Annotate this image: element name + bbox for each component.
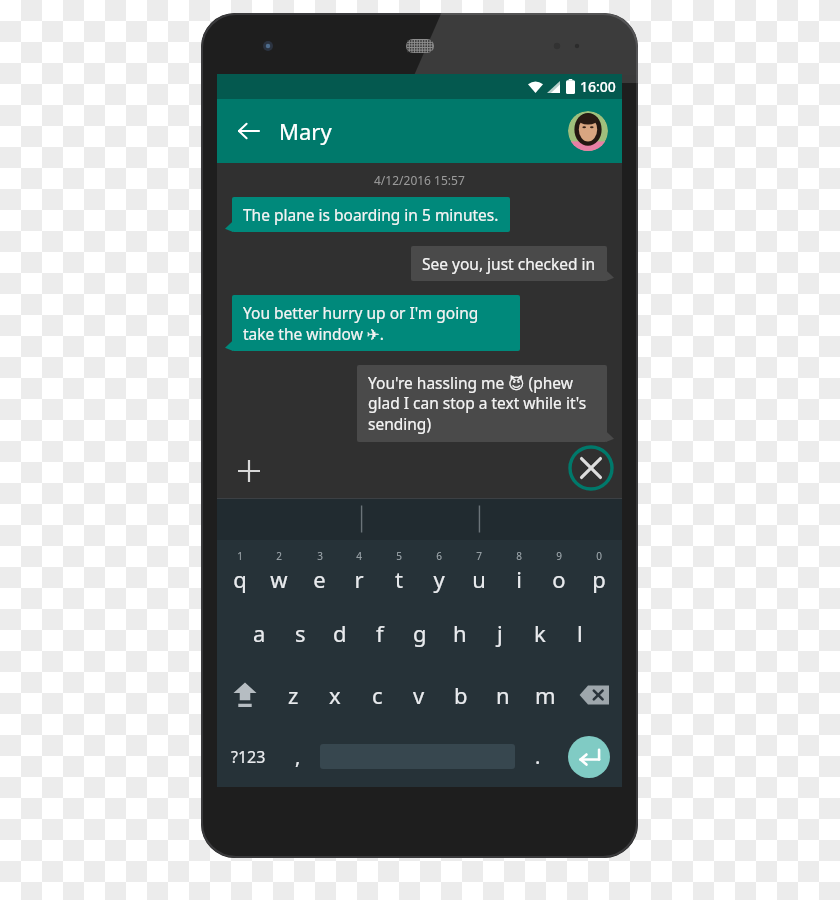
staticText: 4 [356, 549, 362, 563]
staticText: , [295, 743, 301, 770]
staticText: a [253, 618, 266, 648]
button[interactable]: 8 [499, 540, 539, 602]
button[interactable]: 7 [459, 540, 499, 602]
staticText: w [270, 564, 288, 594]
staticText: t [395, 564, 403, 594]
button[interactable]: b [440, 664, 482, 726]
button[interactable]: Space [316, 726, 519, 787]
button[interactable]: 4 [339, 540, 379, 602]
staticText: 3 [317, 549, 323, 563]
staticText: r [354, 564, 364, 594]
button[interactable]: Contact photo [568, 111, 608, 151]
button[interactable]: 5 [379, 540, 419, 602]
button[interactable]: You better hurry up or I'm going take th… [232, 295, 520, 351]
staticText: l [577, 618, 583, 648]
staticText: c [372, 680, 383, 710]
button[interactable]: k [520, 602, 560, 664]
button[interactable]: d [320, 602, 360, 664]
button[interactable]: z [272, 664, 314, 726]
staticText: 7 [476, 549, 482, 563]
button[interactable]: 1 [220, 540, 259, 602]
button[interactable]: You're hassling me 😈 (phew glad I can st… [357, 365, 607, 442]
button[interactable]: m [524, 664, 566, 726]
staticText: o [552, 564, 566, 594]
staticText: ?123 [231, 746, 266, 768]
staticText: i [516, 564, 522, 594]
button[interactable]: c [356, 664, 398, 726]
button[interactable]: l [560, 602, 600, 664]
staticText: You better hurry up or I'm going take th… [243, 302, 509, 344]
staticText: 8 [516, 549, 522, 563]
button[interactable]: Enter [556, 726, 622, 787]
staticText: z [288, 680, 299, 710]
staticText: j [497, 618, 503, 648]
staticText: d [333, 618, 347, 648]
staticText: The plane is boarding in 5 minutes. [243, 204, 499, 225]
button[interactable]: Attach [234, 456, 264, 486]
staticText: n [496, 680, 510, 710]
button[interactable]: a [239, 602, 280, 664]
staticText: v [413, 680, 425, 710]
staticText: 16:00 [580, 77, 616, 96]
button[interactable]: 3 [299, 540, 339, 602]
staticText: f [376, 618, 384, 648]
button[interactable]: ?123 [217, 726, 279, 787]
staticText: m [535, 680, 556, 710]
button[interactable]: Cancel sending [568, 445, 614, 491]
staticText: x [329, 680, 341, 710]
button[interactable]: j [480, 602, 520, 664]
button[interactable]: x [314, 664, 356, 726]
button[interactable]: f [360, 602, 400, 664]
staticText: 0 [596, 549, 602, 563]
button[interactable]: 0 [579, 540, 619, 602]
button[interactable]: v [398, 664, 440, 726]
staticText: 6 [436, 549, 442, 563]
staticText: 1 [237, 549, 243, 563]
staticText: You're hassling me 😈 (phew glad I can st… [368, 372, 596, 435]
button[interactable]: g [400, 602, 440, 664]
button[interactable]: Back [233, 115, 265, 147]
staticText: e [313, 564, 326, 594]
button[interactable]: h [440, 602, 480, 664]
staticText: 9 [556, 549, 562, 563]
staticText: See you, just checked in [422, 253, 596, 274]
button[interactable]: 2 [259, 540, 299, 602]
staticText: q [233, 564, 247, 594]
button[interactable]: s [280, 602, 320, 664]
button[interactable]: . [519, 726, 556, 787]
staticText: u [472, 564, 486, 594]
staticText: p [592, 564, 606, 594]
staticText: Mary [279, 116, 332, 146]
button[interactable]: Shift [217, 664, 272, 726]
staticText: g [413, 618, 427, 648]
staticText: b [454, 680, 468, 710]
staticText: 2 [276, 549, 282, 563]
button[interactable]: , [279, 726, 316, 787]
button[interactable]: Back [217, 99, 622, 163]
staticText: . [535, 743, 541, 770]
button[interactable]: 9 [539, 540, 579, 602]
staticText: y [433, 564, 445, 594]
button[interactable]: See you, just checked in [411, 246, 607, 281]
button[interactable]: The plane is boarding in 5 minutes. [232, 197, 510, 232]
staticText: 5 [396, 549, 402, 563]
button[interactable]: 6 [419, 540, 459, 602]
staticText: s [295, 618, 306, 648]
staticText: k [534, 618, 546, 648]
staticText: 4/12/2016 15:57 [374, 172, 465, 188]
button[interactable]: n [482, 664, 524, 726]
button[interactable]: Backspace [566, 664, 622, 726]
staticText: h [453, 618, 467, 648]
